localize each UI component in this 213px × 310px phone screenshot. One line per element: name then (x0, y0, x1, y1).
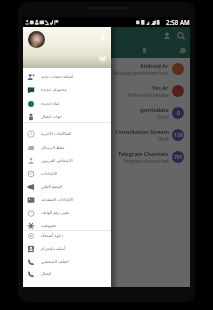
staticText: 701 (174, 154, 183, 161)
staticText: مجموعة جديدة (41, 87, 67, 93)
button[interactable]: Contacts (162, 31, 172, 41)
button[interactable]: Yes Ar (23, 80, 190, 102)
button[interactable]: الإعدادات المتقدمة (23, 193, 111, 206)
staticText: Hello world preview (128, 92, 169, 98)
button[interactable]: Tab 2 (63, 45, 74, 56)
button[interactable]: Profile photo (28, 31, 45, 48)
staticText: الإعدادات المتقدمة (41, 197, 74, 203)
staticText: 0 (177, 110, 180, 117)
button[interactable]: جهات اتصال (23, 110, 111, 123)
button[interactable]: اتصال (23, 267, 111, 280)
staticText: تغيير رقم الهاتف (41, 210, 70, 216)
staticText: خصوصية (41, 223, 57, 228)
staticText: الأشخاص القريبون (41, 158, 73, 164)
staticText: Telegram channel text (123, 158, 169, 164)
staticText: الوضع الليلي (41, 184, 63, 190)
button[interactable]: Tab 3 (101, 45, 112, 56)
staticText: اضافة حساب جديد (41, 74, 74, 80)
button[interactable]: المكالمات الأخيرة (23, 127, 111, 140)
button[interactable]: تغيير رقم الهاتف (23, 206, 111, 219)
staticText: اسم المستخدم (27, 52, 53, 58)
button[interactable]: الأشخاص القريبون (23, 154, 111, 167)
staticText: Consultation Stream (115, 128, 169, 135)
button[interactable]: اضافة حساب جديد (23, 70, 111, 83)
staticText: دعوة أصدقاء (41, 233, 63, 239)
staticText: اتصال (41, 271, 52, 276)
staticText: Android Ar (140, 62, 169, 69)
button[interactable]: الملف الشخصي (23, 255, 111, 268)
button[interactable]: خصوصية (23, 219, 111, 232)
button[interactable]: Tab 1 (25, 45, 36, 56)
staticText: الملف الشخصي (41, 259, 69, 265)
staticText: جهات اتصال (41, 114, 63, 120)
staticText: حفظ الرسائل (41, 145, 65, 151)
button[interactable]: الوضع الليلي (23, 180, 111, 193)
staticText: المكالمات الأخيرة (41, 131, 72, 137)
button[interactable]: Telegram Channels (23, 146, 190, 168)
button[interactable]: Consultation Stream (23, 124, 190, 146)
staticText: أسئلة تيليجرام (41, 246, 66, 252)
staticText: 74% (152, 20, 160, 25)
staticText: 2:58 AM (166, 18, 190, 26)
staticText: الإعدادات (41, 171, 58, 176)
button[interactable]: الإعدادات (23, 167, 111, 180)
staticText: 128 (174, 132, 183, 139)
staticText: Draft: (157, 114, 169, 120)
button[interactable]: Android Ar (23, 58, 190, 80)
button[interactable]: gsmtodate (23, 102, 190, 124)
button[interactable]: دعوة أصدقاء (23, 229, 111, 242)
button[interactable]: Switch account (98, 54, 107, 63)
button[interactable]: أسئلة تيليجرام (23, 242, 111, 255)
button[interactable]: Night mode (97, 32, 106, 41)
staticText: Telegram Channels (118, 150, 169, 157)
button[interactable]: قناة جديدة (23, 97, 111, 110)
staticText: gsmtodate (140, 106, 169, 113)
button[interactable]: مجموعة جديدة (23, 83, 111, 96)
staticText: Draft (158, 136, 169, 142)
staticText: Message preview text here (113, 70, 169, 76)
staticText: قناة جديدة (41, 101, 60, 107)
button[interactable]: Search (176, 31, 186, 41)
staticText: Yes Ar (152, 84, 169, 91)
button[interactable]: Tab 4 (139, 45, 150, 56)
button[interactable]: Tab 5 (177, 45, 188, 56)
button[interactable]: حفظ الرسائل (23, 141, 111, 154)
